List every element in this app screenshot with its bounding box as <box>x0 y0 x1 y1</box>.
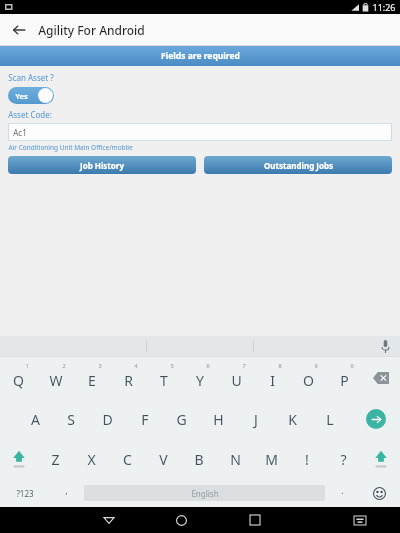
staticText: 0 <box>350 362 354 369</box>
staticText: V <box>159 450 168 469</box>
staticText: 8 <box>278 362 282 369</box>
staticText: L <box>326 410 334 429</box>
button[interactable]: Recent apps <box>218 507 291 533</box>
button[interactable]: Shift <box>0 439 38 479</box>
button[interactable]: L <box>311 399 348 439</box>
staticText: 1 <box>25 362 29 369</box>
staticText: S <box>67 410 75 429</box>
staticText: 6 <box>206 362 210 369</box>
button[interactable]: G <box>163 399 200 439</box>
staticText: G <box>176 410 187 429</box>
button[interactable]: 6 <box>182 357 218 399</box>
button[interactable]: ?123 <box>0 479 49 507</box>
staticText: C <box>123 450 132 469</box>
button[interactable]: . <box>325 479 359 507</box>
staticText: A <box>31 410 40 429</box>
button[interactable]: 8 <box>254 357 290 399</box>
staticText: N <box>230 450 241 469</box>
staticText: 11:26 <box>372 1 396 13</box>
staticText: Yes <box>15 91 28 101</box>
button[interactable]: Job History <box>8 156 196 174</box>
staticText: U <box>231 371 242 390</box>
button[interactable]: 1 <box>0 357 37 399</box>
staticText: 2 <box>62 362 66 369</box>
button[interactable]: Backspace <box>362 357 400 399</box>
staticText: B <box>194 450 204 469</box>
button[interactable]: Outstanding Jobs <box>204 156 392 174</box>
button[interactable]: D <box>89 399 126 439</box>
button[interactable]: Switch keyboard <box>331 507 389 533</box>
staticText: Fields are required <box>161 50 240 62</box>
staticText: H <box>213 410 224 429</box>
staticText: R <box>124 371 133 390</box>
button[interactable]: Z <box>38 439 73 479</box>
staticText: 4 <box>134 362 138 369</box>
staticText: Job History <box>80 160 124 171</box>
staticText: M <box>265 450 278 469</box>
button[interactable]: M <box>253 439 289 479</box>
button[interactable]: Voice input <box>378 339 392 353</box>
button[interactable]: X <box>73 439 109 479</box>
button[interactable]: Yes <box>8 87 54 104</box>
button[interactable]: C <box>109 439 145 479</box>
button[interactable]: N <box>217 439 253 479</box>
button[interactable]: S <box>53 399 89 439</box>
button[interactable]: ? <box>325 439 361 479</box>
staticText: 3 <box>98 362 102 369</box>
button[interactable]: 3 <box>74 357 110 399</box>
button[interactable]: 4 <box>110 357 146 399</box>
staticText: I <box>270 371 275 390</box>
staticText: Air Conditioning Unit Main Office/mobile <box>8 143 133 152</box>
button[interactable]: 5 <box>146 357 182 399</box>
staticText: 9 <box>314 362 318 369</box>
staticText: J <box>254 410 258 429</box>
button[interactable]: 7 <box>218 357 254 399</box>
staticText: . <box>341 484 344 496</box>
staticText: K <box>288 410 297 429</box>
button[interactable]: Back <box>72 507 145 533</box>
button[interactable]: 2 <box>37 357 74 399</box>
button[interactable]: J <box>237 399 274 439</box>
staticText: Outstanding Jobs <box>264 160 333 171</box>
button[interactable]: V <box>145 439 181 479</box>
staticText: 5 <box>170 362 174 369</box>
button[interactable]: 0 <box>326 357 362 399</box>
staticText: 7 <box>242 362 246 369</box>
staticText: Ac1 <box>13 127 27 138</box>
staticText: English <box>191 488 219 499</box>
staticText: Scan Asset ? <box>8 72 54 83</box>
staticText: Q <box>13 371 24 390</box>
staticText: ? <box>340 450 347 469</box>
button[interactable]: Ac1 <box>8 123 392 141</box>
button[interactable]: Shift <box>361 439 400 479</box>
button[interactable]: H <box>200 399 237 439</box>
staticText: P <box>340 371 349 390</box>
staticText: , <box>65 484 68 496</box>
staticText: Y <box>196 371 204 390</box>
staticText: T <box>160 371 168 390</box>
staticText: X <box>87 450 96 469</box>
staticText: ! <box>305 450 309 469</box>
staticText: Z <box>51 450 60 469</box>
button[interactable]: K <box>274 399 311 439</box>
button[interactable]: 9 <box>290 357 326 399</box>
button[interactable]: Enter <box>352 399 400 439</box>
staticText: D <box>102 410 113 429</box>
staticText: E <box>88 371 96 390</box>
staticText: Asset Code: <box>8 109 52 120</box>
button[interactable]: Home <box>145 507 218 533</box>
staticText: ?123 <box>16 488 34 499</box>
staticText: W <box>49 371 63 390</box>
staticText: Agility For Android <box>38 22 145 38</box>
button[interactable]: A <box>17 399 53 439</box>
button[interactable]: ! <box>289 439 325 479</box>
button[interactable]: Back <box>8 19 30 41</box>
staticText: O <box>303 371 314 390</box>
button[interactable]: , <box>49 479 84 507</box>
button[interactable]: Emoji <box>359 479 400 507</box>
button[interactable]: B <box>181 439 217 479</box>
button[interactable]: F <box>126 399 163 439</box>
button[interactable]: English <box>84 485 325 501</box>
staticText: F <box>141 410 149 429</box>
